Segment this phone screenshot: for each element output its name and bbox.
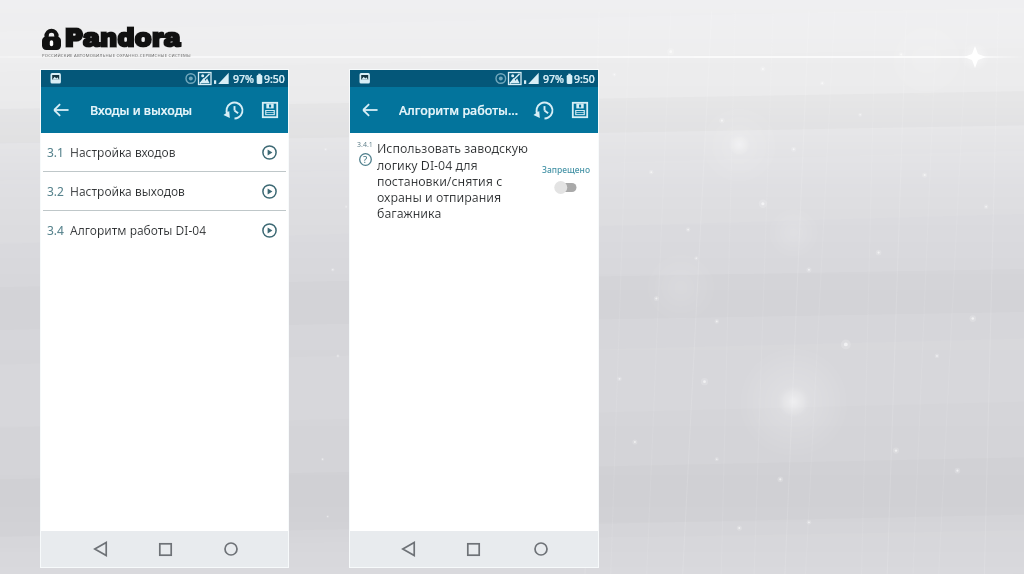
staticText: Входы и выходы <box>90 102 193 119</box>
staticText: Алгоритм работы… <box>399 102 519 119</box>
staticText: 9:50 <box>574 72 595 86</box>
staticText: Настройка выходов <box>70 183 185 199</box>
staticText: Pandora <box>64 24 181 52</box>
button[interactable]: 3.1 <box>41 133 288 171</box>
button[interactable]: Back <box>350 87 390 133</box>
staticText: 3.4.1 <box>357 140 373 150</box>
button[interactable]: Back <box>41 87 81 133</box>
button[interactable]: 3.4 <box>41 211 288 249</box>
button[interactable]: Save <box>562 87 598 133</box>
button[interactable]: Home <box>513 531 568 567</box>
staticText: Алгоритм работы DI-04 <box>70 222 206 238</box>
staticText: 9:50 <box>264 72 285 86</box>
staticText: 97% <box>543 72 564 86</box>
staticText: ? <box>363 153 368 166</box>
staticText: Настройка входов <box>70 144 176 160</box>
button[interactable]: Home <box>204 531 258 567</box>
staticText: 3.1 <box>47 144 64 160</box>
staticText: 97% <box>233 72 254 86</box>
button[interactable]: Запрещено <box>542 164 591 194</box>
button[interactable]: 3.2 <box>41 172 288 210</box>
button[interactable]: History <box>216 87 252 133</box>
button[interactable]: Save <box>252 87 288 133</box>
button[interactable]: Help <box>359 153 372 166</box>
button[interactable]: History <box>526 87 562 133</box>
button[interactable]: Back <box>73 531 127 567</box>
staticText: Запрещено <box>542 164 591 176</box>
button[interactable]: Recent apps <box>446 531 501 567</box>
button[interactable]: Back <box>381 531 435 567</box>
staticText: 3.4 <box>47 222 64 238</box>
staticText: Использовать заводскую логику DI-04 для … <box>377 140 529 222</box>
staticText: РОССИЙСКИЕ АВТОМОБИЛЬНЫЕ ОХРАННО-СЕРВИСН… <box>42 53 191 59</box>
button[interactable]: Recent apps <box>138 531 192 567</box>
staticText: 3.2 <box>47 183 64 199</box>
